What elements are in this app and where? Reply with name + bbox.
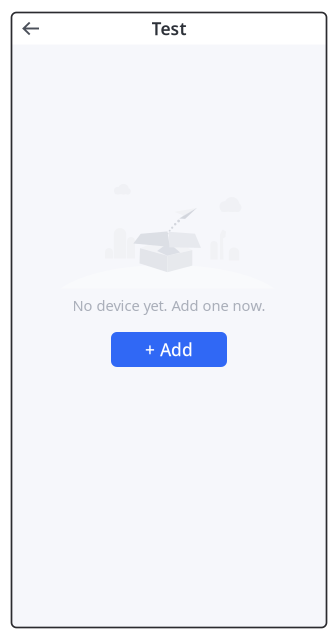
staticText: + Add [145, 338, 193, 361]
staticText: No device yet. Add one now. [72, 295, 265, 315]
button[interactable]: + Add [111, 332, 227, 367]
staticText: Test [151, 17, 186, 40]
button[interactable]: Back [11, 12, 49, 44]
